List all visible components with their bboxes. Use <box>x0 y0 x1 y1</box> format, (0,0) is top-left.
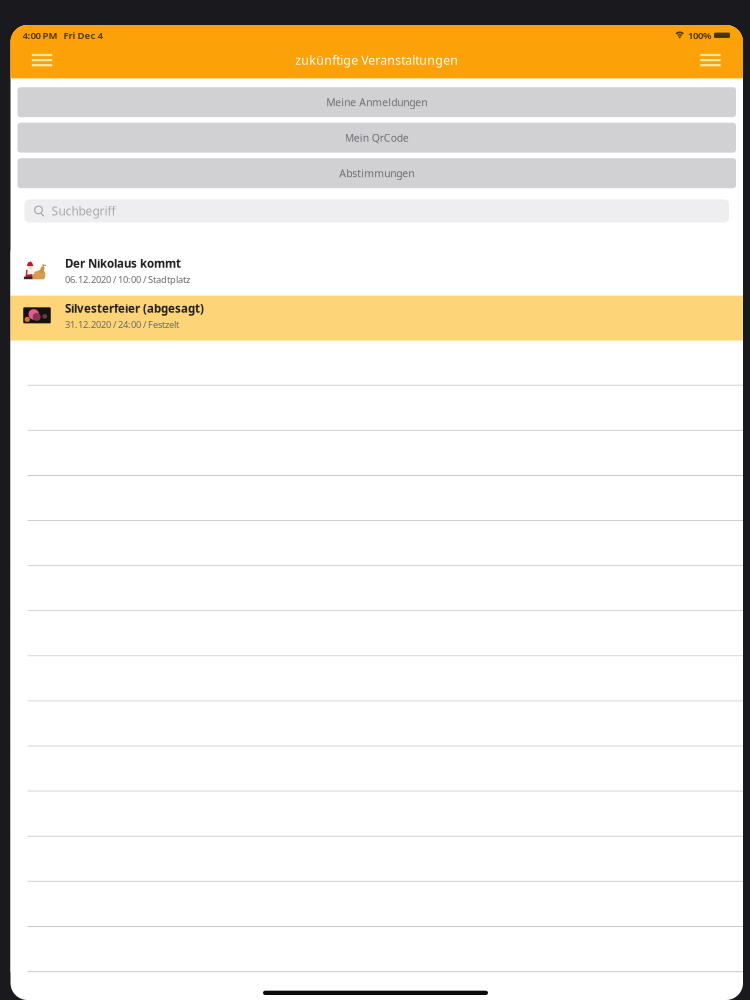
staticText: Fri Dec 4 <box>63 29 102 42</box>
button[interactable]: Silvesterfeier (abgesagt) <box>10 296 743 341</box>
staticText: 100% <box>688 29 711 42</box>
staticText: Abstimmungen <box>339 166 414 180</box>
staticText: Suchbegriff <box>51 203 115 219</box>
staticText: 06.12.2020 / 10:00 / Stadtplatz <box>65 273 190 286</box>
button[interactable]: Mein QrCode <box>17 123 736 153</box>
staticText: Meine Anmeldungen <box>326 95 427 109</box>
button[interactable]: Der Nikolaus kommt <box>10 250 743 296</box>
button[interactable]: Meine Anmeldungen <box>17 87 736 117</box>
staticText: zukünftige Veranstaltungen <box>295 52 458 68</box>
staticText: Der Nikolaus kommt <box>65 255 181 271</box>
button[interactable]: Filter <box>689 45 731 75</box>
staticText: 31.12.2020 / 24:00 / Festzelt <box>65 318 179 331</box>
button[interactable]: Menu <box>21 45 63 75</box>
button[interactable]: Abstimmungen <box>17 158 736 188</box>
staticText: Mein QrCode <box>345 131 409 145</box>
staticText: 4:00 PM <box>22 29 57 42</box>
staticText: Silvesterfeier (abgesagt) <box>65 300 204 316</box>
